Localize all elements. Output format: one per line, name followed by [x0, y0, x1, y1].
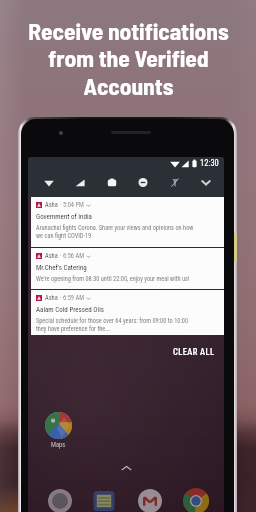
staticText: Special schedule for those over 64 years… [36, 317, 189, 333]
staticText: Maps [51, 441, 66, 449]
button[interactable]: Flashlight [168, 175, 182, 189]
staticText: Asha [45, 201, 58, 209]
staticText: · 6:59 AM [60, 294, 84, 302]
staticText: 12:30 [200, 158, 219, 168]
button[interactable]: Asha [31, 248, 224, 289]
staticText: Government of India [36, 213, 92, 221]
button[interactable]: Wi-Fi [42, 175, 56, 189]
button[interactable]: Gmail [138, 489, 162, 512]
staticText: · 5:04 PM [60, 201, 84, 209]
staticText: Receive notifications from the Verified … [28, 16, 229, 100]
staticText: Arunachal fights Corona. Share your view… [36, 224, 194, 240]
button[interactable]: Open app drawer [121, 465, 132, 471]
button[interactable]: Maps [45, 412, 72, 449]
button[interactable]: Mobile data [73, 175, 87, 189]
button[interactable]: Messages [92, 489, 116, 512]
button[interactable]: Chrome [183, 488, 209, 512]
staticText: Asha [45, 252, 58, 260]
staticText: Aalam Cold Pressed Oils [36, 306, 104, 314]
staticText: CLEAR ALL [173, 347, 215, 357]
button[interactable]: Asha [31, 290, 224, 335]
button[interactable]: Do not disturb [136, 175, 150, 189]
staticText: We're opening from 08:30 until 22:00, en… [36, 275, 190, 282]
staticText: Asha [45, 294, 58, 302]
button[interactable]: CLEAR ALL [173, 347, 215, 357]
button[interactable]: Battery [105, 175, 119, 189]
button[interactable]: Asha [31, 197, 224, 247]
button[interactable]: Expand [199, 175, 213, 189]
staticText: Mr.Chef's Catering [36, 264, 87, 272]
button[interactable]: Phone [48, 489, 72, 512]
staticText: · 6:56 AM [60, 252, 84, 260]
